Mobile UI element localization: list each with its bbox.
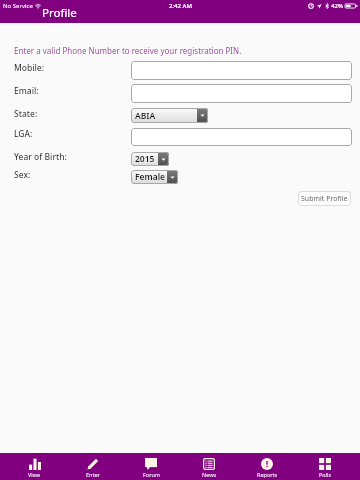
staticText: View (28, 471, 41, 478)
staticText: Year of Birth: (14, 151, 67, 163)
staticText: ABIA (135, 110, 197, 122)
staticText: Female (135, 171, 167, 183)
staticText: 42% (331, 2, 343, 10)
staticText: 2:42 AM (169, 2, 192, 10)
staticText: Sex: (14, 169, 31, 181)
staticText: 2015 (135, 153, 158, 165)
button[interactable]: Mobile (131, 61, 352, 80)
button[interactable]: View (5, 453, 64, 480)
staticText: Reports (257, 471, 278, 478)
button[interactable]: Email (131, 84, 352, 103)
staticText: News (202, 471, 217, 478)
button[interactable]: Forum (122, 453, 180, 480)
button[interactable]: Reports (238, 453, 296, 480)
staticText: Polls (319, 471, 332, 478)
button[interactable]: News (180, 453, 238, 480)
button[interactable]: Enter (64, 453, 122, 480)
button[interactable]: Polls (296, 453, 354, 480)
staticText: Submit Profile (301, 194, 348, 204)
staticText: Mobile: (14, 62, 45, 74)
staticText: Forum (143, 471, 160, 478)
staticText: Enter a valid Phone Number to receive yo… (14, 45, 242, 56)
staticText: No Service (3, 2, 33, 10)
staticText: Email: (14, 85, 39, 97)
button[interactable]: LGA (131, 128, 352, 146)
button[interactable]: ABIA (131, 108, 208, 123)
staticText: LGA: (14, 128, 33, 140)
staticText: Enter (86, 471, 100, 478)
button[interactable]: 2015 (131, 152, 169, 166)
button[interactable]: Submit Profile (298, 191, 351, 206)
staticText: State: (14, 108, 38, 120)
button[interactable]: Female (131, 170, 178, 184)
staticText: Profile (42, 5, 77, 21)
